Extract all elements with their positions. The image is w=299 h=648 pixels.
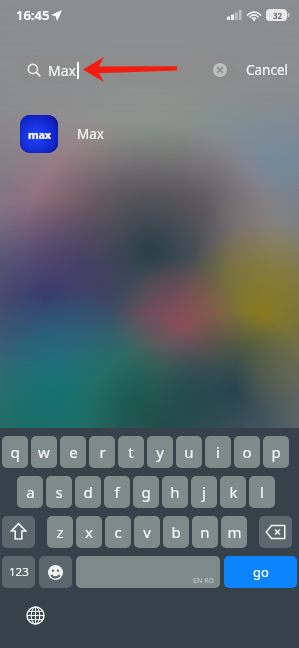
button[interactable]: Emoji (39, 556, 72, 588)
staticText: g (141, 482, 151, 502)
staticText: h (170, 482, 180, 502)
button[interactable]: v (134, 516, 160, 548)
staticText: 32 (273, 10, 283, 21)
staticText: 123 (9, 564, 29, 580)
button[interactable]: u (176, 436, 202, 468)
staticText: e (69, 442, 78, 462)
button[interactable]: x (76, 516, 102, 548)
staticText: max (28, 127, 51, 142)
button[interactable]: Clear search (213, 63, 227, 77)
button[interactable]: Cancel (246, 55, 289, 85)
staticText: d (83, 482, 93, 502)
staticText: 16:45 (16, 6, 50, 24)
staticText: s (55, 482, 63, 502)
button[interactable]: t (118, 436, 144, 468)
button[interactable]: d (75, 476, 101, 508)
staticText: q (10, 442, 20, 462)
button[interactable]: h (162, 476, 188, 508)
staticText: j (202, 482, 206, 502)
staticText: t (128, 442, 134, 462)
staticText: y (156, 442, 164, 462)
button[interactable]: i (205, 436, 231, 468)
button[interactable]: q (2, 436, 28, 468)
button[interactable]: j (191, 476, 217, 508)
button[interactable]: c (105, 516, 131, 548)
button[interactable]: 123 (2, 556, 35, 588)
button[interactable]: Change keyboard language (22, 602, 48, 628)
staticText: go (253, 563, 269, 581)
staticText: x (85, 522, 93, 542)
staticText: r (99, 442, 106, 462)
button[interactable]: p (263, 436, 289, 468)
staticText: o (242, 442, 252, 462)
staticText: i (216, 442, 220, 462)
button[interactable]: Space (76, 556, 220, 588)
staticText: Max (77, 125, 104, 143)
button[interactable]: s (46, 476, 72, 508)
button[interactable]: o (234, 436, 260, 468)
button[interactable]: e (60, 436, 86, 468)
staticText: l (260, 482, 264, 502)
staticText: f (114, 482, 120, 502)
button[interactable]: w (31, 436, 57, 468)
button[interactable]: Backspace (259, 516, 292, 548)
button[interactable]: max (0, 113, 299, 155)
staticText: Max (48, 61, 76, 80)
button[interactable]: f (104, 476, 130, 508)
staticText: Cancel (246, 61, 289, 79)
button[interactable]: n (192, 516, 218, 548)
staticText: n (200, 522, 210, 542)
staticText: EN RO (193, 576, 215, 586)
button[interactable]: y (147, 436, 173, 468)
button[interactable]: k (220, 476, 246, 508)
staticText: k (229, 482, 238, 502)
staticText: a (26, 482, 35, 502)
button[interactable]: a (17, 476, 43, 508)
button[interactable]: l (249, 476, 275, 508)
button[interactable]: m (221, 516, 247, 548)
staticText: u (184, 442, 194, 462)
staticText: w (38, 442, 50, 462)
staticText: m (227, 522, 242, 542)
button[interactable]: r (89, 436, 115, 468)
staticText: v (143, 522, 151, 542)
button[interactable]: z (47, 516, 73, 548)
staticText: p (271, 442, 281, 462)
button[interactable]: go (224, 556, 297, 588)
staticText: b (171, 522, 181, 542)
button[interactable]: g (133, 476, 159, 508)
staticText: z (56, 522, 64, 542)
button[interactable]: b (163, 516, 189, 548)
button[interactable]: Max (18, 55, 236, 85)
button[interactable]: Shift (2, 516, 35, 548)
staticText: c (114, 522, 122, 542)
